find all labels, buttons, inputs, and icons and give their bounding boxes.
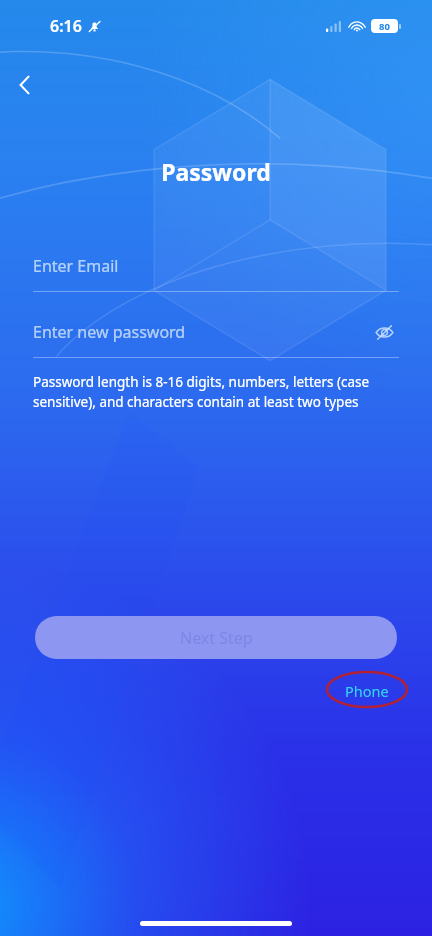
button[interactable]: Enter Email xyxy=(33,248,399,292)
staticText: Enter Email xyxy=(33,255,119,277)
staticText: 6:16 xyxy=(50,15,82,37)
staticText: Password xyxy=(0,156,432,187)
button[interactable]: Next Step xyxy=(35,616,397,659)
button[interactable]: Back xyxy=(2,62,48,108)
staticText: Enter new password xyxy=(33,321,186,343)
staticText: Phone xyxy=(345,681,389,701)
button[interactable]: Show password xyxy=(369,317,399,347)
button[interactable]: Enter new password xyxy=(33,314,399,358)
staticText: Password length is 8-16 digits, numbers,… xyxy=(33,373,399,411)
staticText: 80 xyxy=(379,20,390,33)
button[interactable]: Phone xyxy=(326,669,408,713)
staticText: Next Step xyxy=(180,627,253,649)
